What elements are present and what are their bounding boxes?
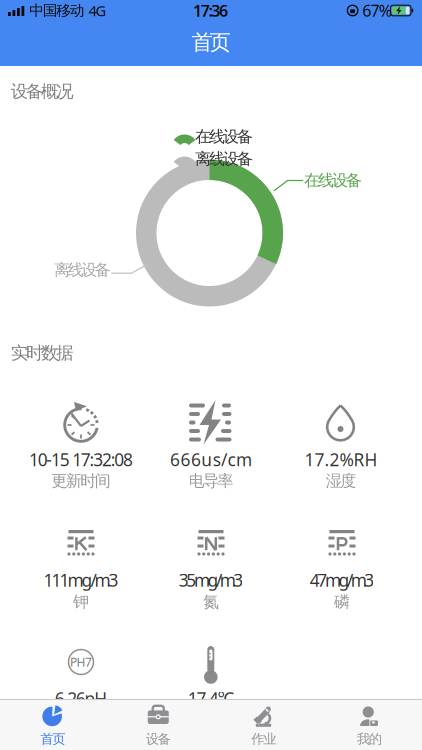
staticText: 在线设备 [195, 127, 253, 147]
staticText: 111mg/m3 [43, 568, 118, 591]
staticText: 17:36 [193, 0, 228, 21]
staticText: 实时数据 [11, 342, 73, 364]
staticText: 17.2%RH [304, 448, 377, 471]
staticText: 4G [88, 1, 107, 20]
staticText: 离线设备 [54, 260, 111, 280]
staticText: 我的 [357, 731, 382, 747]
button[interactable]: 首页 [0, 700, 105, 750]
button[interactable]: 我的 [316, 700, 422, 750]
staticText: 35mg/m3 [179, 568, 243, 591]
staticText: 湿度 [326, 471, 356, 491]
staticText: 更新时间 [51, 471, 111, 491]
button[interactable]: 设备 [105, 700, 211, 750]
staticText: 磷 [334, 592, 350, 612]
staticText: 首页 [40, 731, 65, 747]
staticText: 离线设备 [195, 149, 253, 169]
staticText: 电导率 [188, 471, 233, 491]
staticText: 6.26pH [55, 687, 107, 710]
staticText: 钾 [73, 592, 89, 612]
staticText: 666us/cm [170, 448, 252, 471]
staticText: PH7 [70, 654, 92, 670]
staticText: 67% [362, 0, 392, 21]
staticText: 17.4°C [188, 687, 234, 710]
staticText: 作业 [251, 731, 276, 747]
staticText: 设备概况 [11, 81, 73, 102]
staticText: 中国移动 [29, 1, 85, 19]
staticText: 47mg/m3 [310, 568, 374, 591]
staticText: 10-15 17:32:08 [29, 448, 133, 471]
staticText: 首页 [191, 29, 230, 56]
button[interactable]: 作业 [211, 700, 316, 750]
staticText: 氮 [203, 592, 219, 612]
staticText: 在线设备 [304, 171, 362, 190]
staticText: 设备 [146, 731, 171, 747]
